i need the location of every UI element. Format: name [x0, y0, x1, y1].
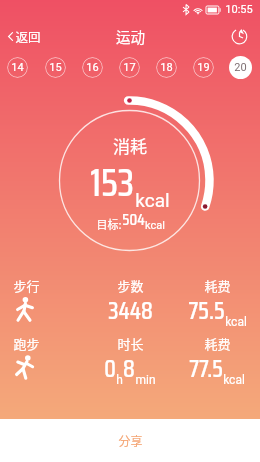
staticText: 17 — [123, 61, 136, 74]
button[interactable]: 18 — [156, 57, 177, 78]
button[interactable]: 16 — [82, 57, 103, 78]
button[interactable]: 17 — [119, 57, 140, 78]
staticText: 时长 — [117, 334, 144, 353]
staticText: 3448 — [108, 292, 153, 330]
staticText: 19 — [197, 61, 210, 74]
staticText: 0 — [104, 350, 116, 388]
staticText: kcal — [135, 189, 170, 211]
staticText: 77.5 — [189, 350, 223, 388]
staticText: 75.5 — [188, 292, 225, 330]
staticText: 18 — [160, 61, 173, 74]
button[interactable]: 分享 — [0, 419, 260, 462]
staticText: min — [135, 373, 156, 387]
staticText: 返回 — [15, 27, 41, 45]
staticText: kcal — [223, 373, 245, 387]
staticText: 消耗 — [113, 133, 147, 158]
button[interactable]: 返回 — [5, 23, 44, 49]
staticText: 10:55 — [225, 3, 253, 16]
staticText: 153 — [90, 153, 134, 213]
staticText: 耗费 — [204, 276, 231, 295]
staticText: 运动 — [116, 26, 145, 47]
button[interactable]: History — [228, 25, 250, 47]
button[interactable]: 20 — [229, 56, 252, 79]
staticText: 步数 — [117, 276, 144, 295]
staticText: 8 — [123, 350, 135, 388]
staticText: h — [116, 373, 123, 387]
staticText: 耗费 — [204, 334, 231, 353]
button[interactable]: 14 — [7, 57, 28, 78]
staticText: 504 — [122, 207, 145, 232]
staticText: 步行 — [13, 276, 40, 295]
staticText: 跑步 — [13, 334, 40, 353]
staticText: 目标: — [96, 216, 122, 232]
staticText: 14 — [11, 61, 24, 74]
staticText: 15 — [49, 61, 62, 74]
staticText: 16 — [86, 61, 99, 74]
staticText: 20 — [234, 61, 247, 74]
staticText: kcal — [145, 219, 165, 232]
staticText: 分享 — [118, 432, 143, 449]
staticText: kcal — [225, 315, 247, 329]
button[interactable]: 15 — [45, 57, 66, 78]
button[interactable]: 19 — [193, 57, 214, 78]
